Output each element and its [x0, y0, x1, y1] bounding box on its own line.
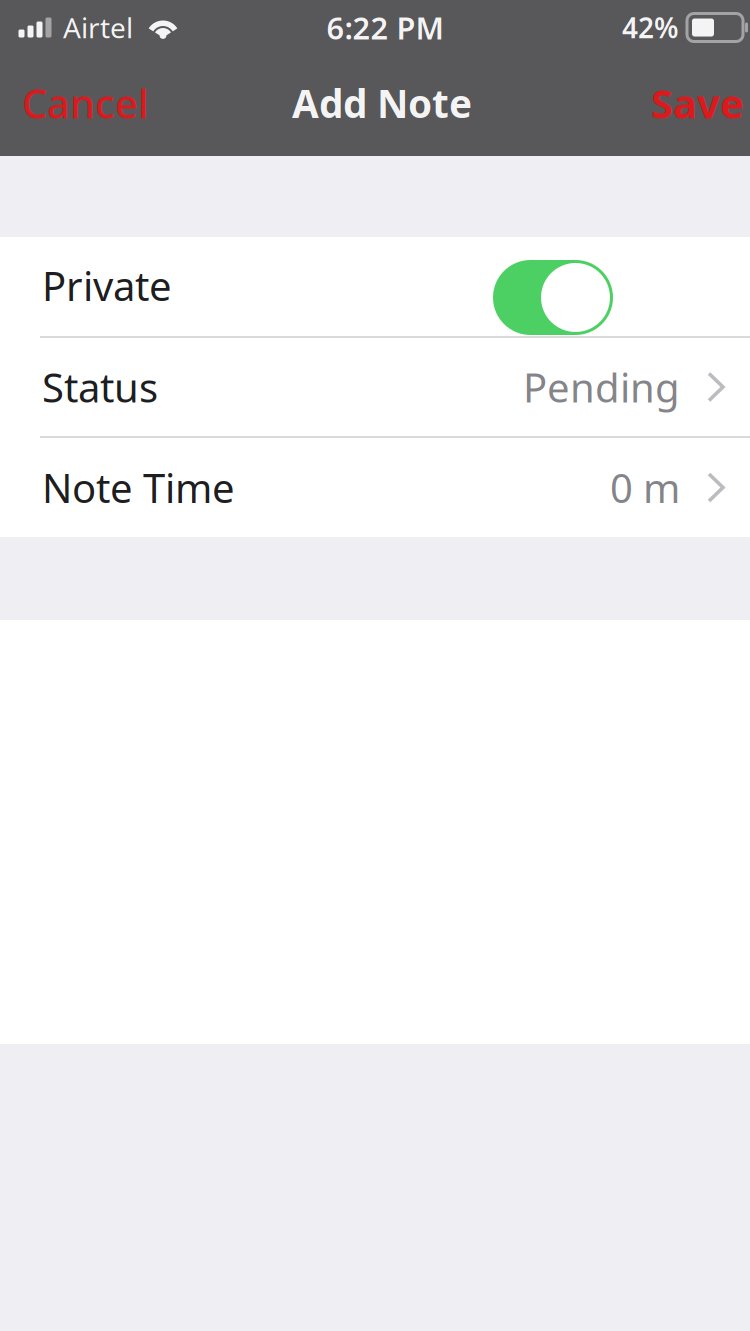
staticText: 42%: [622, 9, 679, 46]
staticText: Note Time: [42, 461, 235, 514]
staticText: 6:22 PM: [326, 7, 443, 48]
button[interactable]: Save: [631, 62, 750, 156]
button[interactable]: Status: [0, 338, 750, 436]
staticText: Status: [42, 360, 158, 413]
staticText: Add Note: [292, 77, 472, 129]
staticText: Pending: [523, 360, 680, 413]
staticText: Save: [651, 76, 744, 129]
button[interactable]: Note Time: [0, 438, 750, 537]
staticText: Cancel: [22, 76, 149, 129]
staticText: Private: [42, 259, 172, 312]
button[interactable]: Cancel: [0, 62, 169, 156]
staticText: Airtel: [63, 9, 133, 46]
staticText: 0 m: [610, 461, 680, 514]
button[interactable]: Private, on: [0, 237, 750, 336]
